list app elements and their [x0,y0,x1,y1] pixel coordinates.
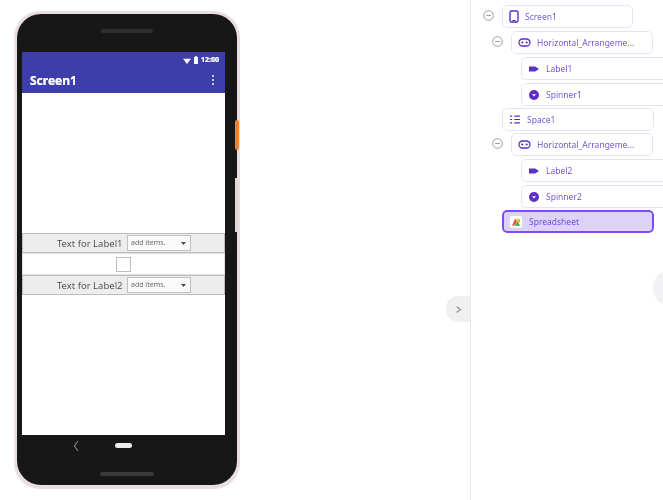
button[interactable]: Collapse Horizontal_Arrangeme… [492,36,503,47]
staticText: add items. [131,238,181,248]
button[interactable]: Text for Label1 [22,233,225,253]
button[interactable]: Label1 [521,57,663,80]
staticText: Horizontal_Arrangeme… [537,37,635,49]
staticText: Spreadsheet [529,216,580,228]
button[interactable]: Collapse Screen1 [483,10,494,21]
staticText: Label2 [546,165,573,177]
button[interactable]: add items. [127,235,191,251]
button[interactable]: Spreadsheet [502,210,654,233]
button[interactable]: Spinner1 [521,83,663,106]
staticText: 12:00 [201,55,219,65]
button[interactable]: Horizontal_Arrangeme… [511,133,653,156]
staticText: Text for Label2 [57,279,123,292]
button[interactable]: Space1 [116,257,131,272]
button[interactable]: Expand panel [446,296,470,322]
staticText: Space1 [527,114,556,126]
button[interactable]: Space1 [502,108,654,131]
button[interactable]: Label2 [521,159,663,182]
staticText: Spinner2 [546,191,582,203]
button[interactable]: Spinner2 [521,185,663,208]
staticText: add items. [131,280,181,290]
button[interactable]: Text for Label2 [22,275,225,295]
button[interactable]: Collapse Horizontal_Arrangeme… [492,138,503,149]
button[interactable]: Screen1 [502,5,633,28]
button[interactable]: More options [206,73,220,87]
staticText: Spinner1 [546,89,582,101]
button[interactable]: Horizontal_Arrangeme… [511,31,653,54]
staticText: Screen1 [525,11,557,23]
staticText: Horizontal_Arrangeme… [537,139,635,151]
staticText: Text for Label1 [57,237,123,250]
staticText: Label1 [546,63,573,75]
button[interactable]: add items. [127,277,191,293]
staticText: Screen1 [30,72,77,88]
